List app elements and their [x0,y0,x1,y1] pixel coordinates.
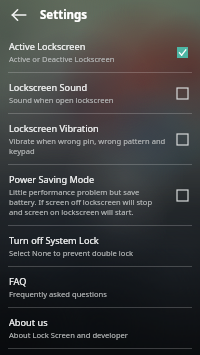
button[interactable]: Lockscreen Sound [0,73,200,113]
button[interactable]: Turn off System Lock [0,226,200,266]
button[interactable]: Active Lockscreen [0,32,200,72]
staticText: Select None to prevent double lock [9,248,134,258]
staticText: About Lock Screen and developer [9,330,128,340]
button[interactable] [170,127,194,151]
staticText: Sound when open lockscreen [9,95,114,105]
staticText: Vibrate when wrong pin, wrong pattern an… [9,136,166,156]
staticText: Settings [40,7,88,23]
staticText: Little performance problem but save batt… [9,187,166,217]
staticText: Active or Deactive Lockscreen [9,54,115,64]
staticText: About us [9,316,48,329]
button[interactable] [170,40,194,64]
staticText: FAQ [9,275,27,288]
button[interactable] [170,81,194,105]
staticText: Lockscreen Vibration [9,122,99,135]
staticText: Power Saving Mode [9,173,95,186]
button[interactable]: Power Saving Mode [0,165,200,225]
button[interactable] [170,183,194,207]
staticText: Turn off System Lock [9,234,99,247]
staticText: Lockscreen Sound [9,81,88,94]
button[interactable]: Back [8,4,30,26]
staticText: Frequently asked questions [9,289,107,299]
button[interactable]: Lockscreen Vibration [0,114,200,164]
staticText: Active Lockscreen [9,40,86,53]
button[interactable]: FAQ [0,267,200,307]
button[interactable]: About us [0,308,200,348]
